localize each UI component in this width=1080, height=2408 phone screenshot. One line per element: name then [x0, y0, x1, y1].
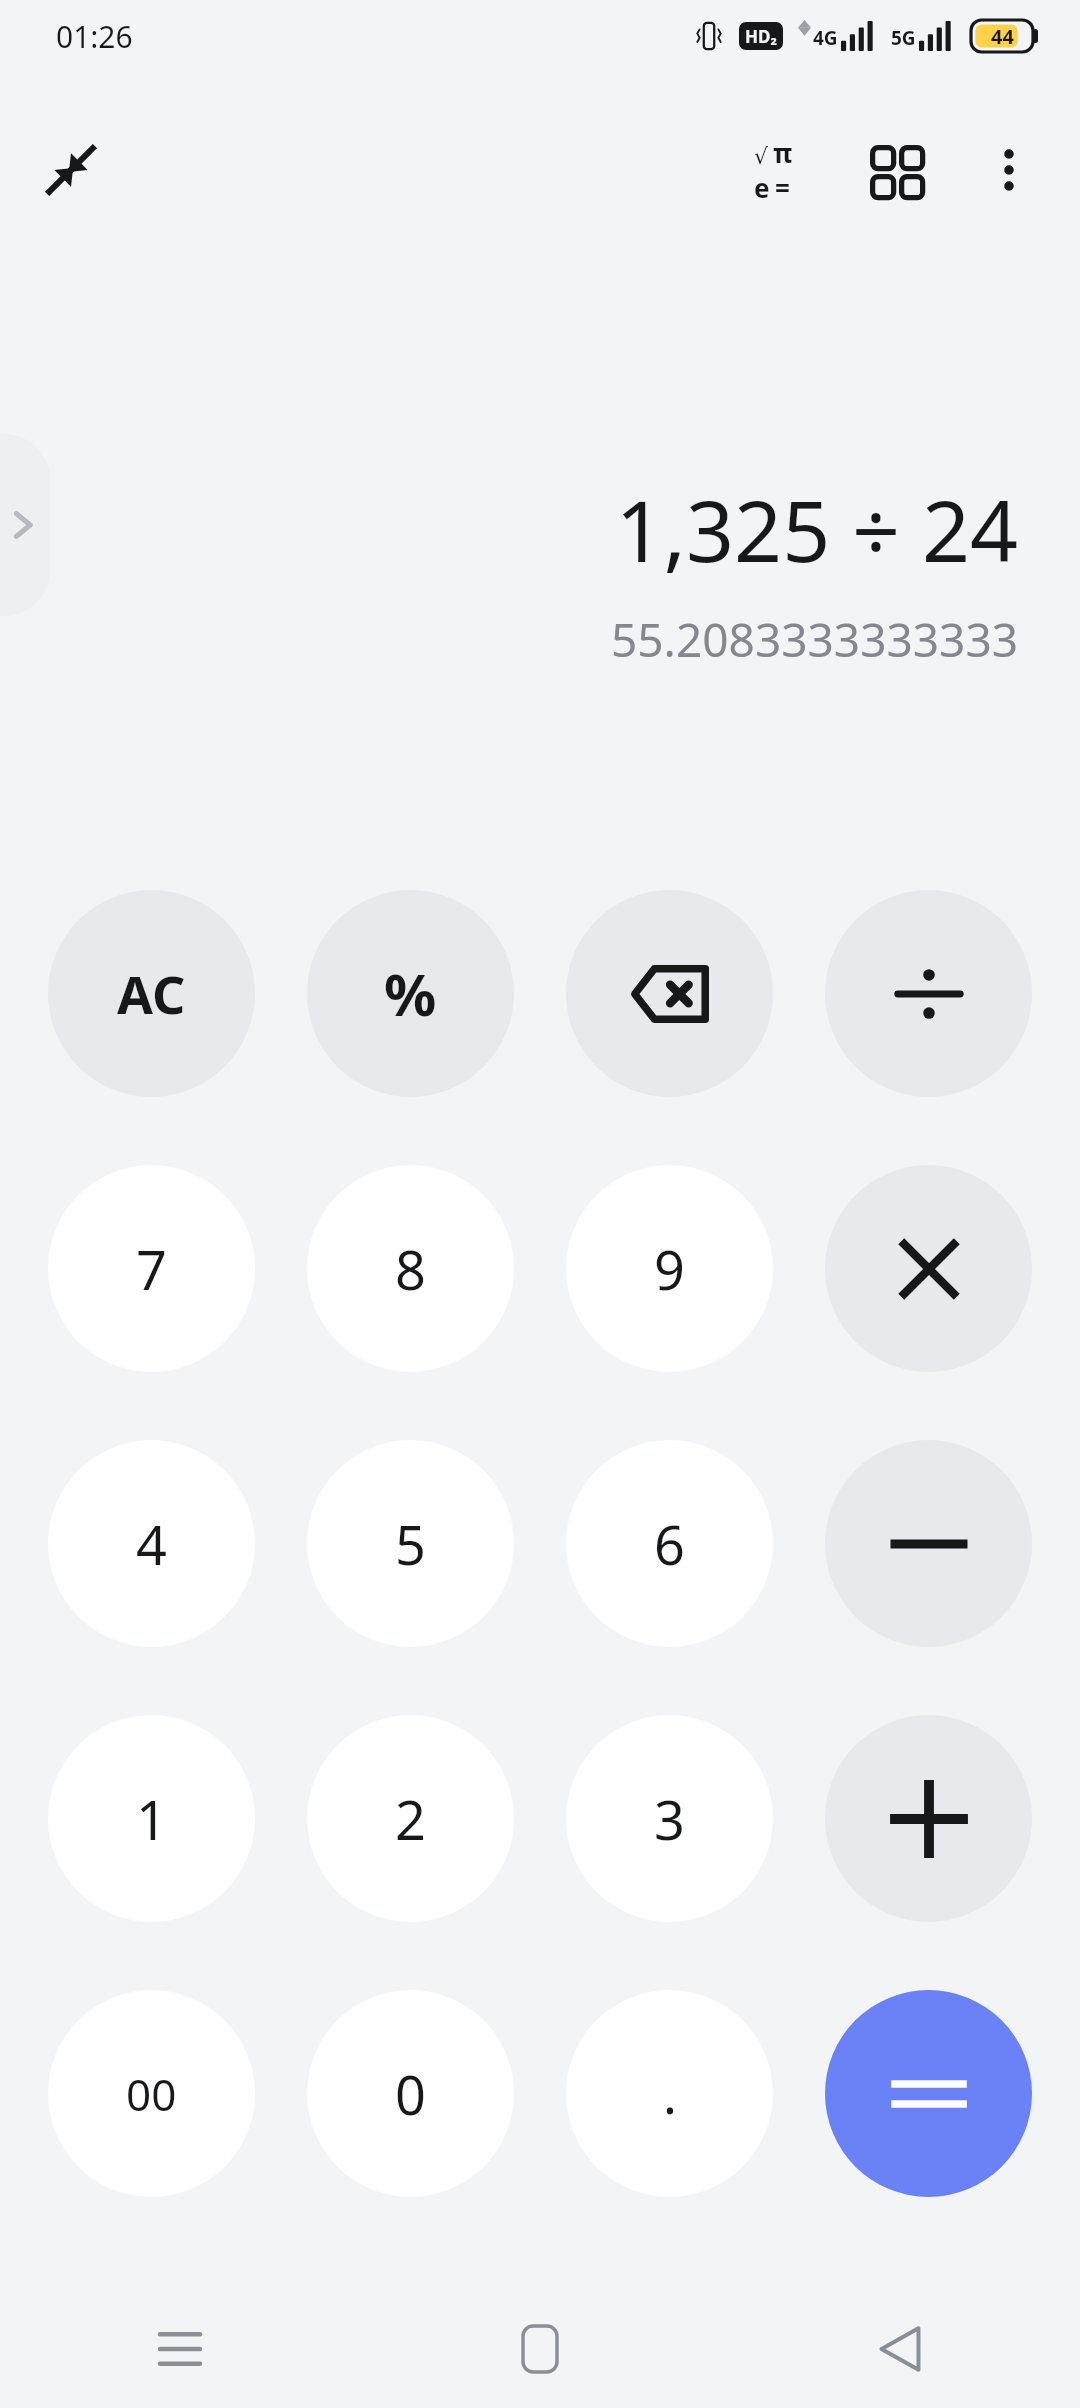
button[interactable]: Back	[720, 2290, 1080, 2408]
button[interactable]: 00	[48, 1990, 255, 2197]
staticText: 3	[654, 1782, 685, 1856]
staticText: π	[773, 135, 793, 170]
button[interactable]: 8	[307, 1165, 514, 1372]
staticText: AC	[117, 958, 186, 1029]
staticText: 6	[654, 1507, 685, 1581]
button[interactable]: 7	[48, 1165, 255, 1372]
staticText: 4G	[813, 25, 838, 51]
button[interactable]: .	[566, 1990, 773, 2197]
staticText: .	[663, 2058, 677, 2129]
button[interactable]: Collapse	[30, 129, 112, 211]
staticText: 4	[136, 1507, 167, 1581]
staticText: %	[384, 954, 437, 1033]
button[interactable]: AC	[48, 890, 255, 1097]
button[interactable]: 6	[566, 1440, 773, 1647]
button[interactable]: Minus	[825, 1440, 1032, 1647]
button[interactable]: More options	[966, 127, 1052, 213]
button[interactable]: Multiply	[825, 1165, 1032, 1372]
staticText: 8	[395, 1232, 426, 1306]
button[interactable]: Unit converter	[852, 127, 938, 213]
button[interactable]: Backspace	[566, 890, 773, 1097]
staticText: 1,325 ÷ 24	[615, 472, 1018, 586]
button[interactable]: 3	[566, 1715, 773, 1922]
button[interactable]: 1	[48, 1715, 255, 1922]
staticText: 5G	[891, 25, 916, 51]
button[interactable]: 0	[307, 1990, 514, 2197]
staticText: 55.2083333333333	[610, 608, 1018, 671]
staticText: 2	[395, 1782, 426, 1856]
button[interactable]: 2	[307, 1715, 514, 1922]
staticText: 5	[395, 1507, 426, 1581]
button[interactable]: 4	[48, 1440, 255, 1647]
staticText: HD₂	[745, 25, 777, 48]
button[interactable]: Equals	[825, 1990, 1032, 2197]
button[interactable]: 5	[307, 1440, 514, 1647]
button[interactable]: %	[307, 890, 514, 1097]
staticText: √	[754, 144, 769, 170]
staticText: 44	[991, 23, 1014, 50]
button[interactable]: Home	[360, 2290, 720, 2408]
staticText: 01:26	[56, 16, 133, 57]
staticText: e	[754, 170, 770, 205]
staticText: 00	[126, 2064, 177, 2124]
button[interactable]: Open history	[0, 434, 50, 616]
staticText: =	[775, 170, 790, 205]
button[interactable]: Divide	[825, 890, 1032, 1097]
button[interactable]: Recent apps	[0, 2290, 360, 2408]
staticText: 7	[136, 1232, 167, 1306]
staticText: 1	[136, 1782, 167, 1856]
button[interactable]: 9	[566, 1165, 773, 1372]
button[interactable]: Plus	[825, 1715, 1032, 1922]
staticText: 9	[654, 1232, 685, 1306]
button[interactable]: Scientific mode	[730, 127, 816, 213]
staticText: 0	[395, 2057, 426, 2131]
